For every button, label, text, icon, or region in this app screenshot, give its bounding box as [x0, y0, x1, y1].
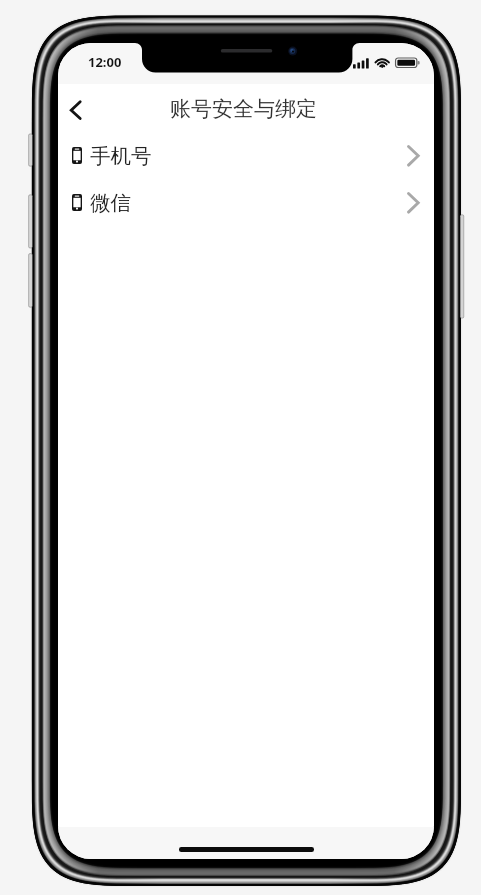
- staticText: 手机号: [90, 143, 152, 169]
- button[interactable]: 微信: [58, 179, 434, 226]
- button[interactable]: 手机号: [58, 132, 434, 179]
- staticText: 12:00: [88, 53, 122, 71]
- staticText: 微信: [90, 190, 131, 216]
- staticText: 账号安全与绑定: [170, 96, 317, 122]
- button[interactable]: 返回: [58, 88, 98, 128]
